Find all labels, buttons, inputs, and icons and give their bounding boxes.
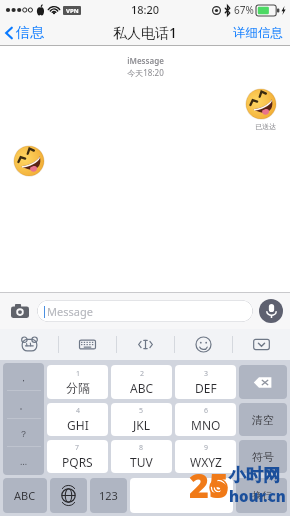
button[interactable]: 清空 — [239, 403, 287, 436]
staticText: 私人电话1 — [113, 23, 178, 42]
staticText: 1 — [76, 369, 81, 379]
staticText: 8 — [139, 443, 144, 453]
staticText: 清空 — [252, 413, 274, 427]
button[interactable]: 符号 — [239, 440, 287, 473]
button[interactable]: 123 — [90, 478, 127, 513]
staticText: 小时网 — [229, 465, 280, 486]
button[interactable]: 3 — [175, 365, 236, 399]
button[interactable]: 9 — [175, 440, 236, 473]
staticText: PQRS — [62, 454, 93, 470]
staticText: 信息 — [16, 24, 44, 42]
staticText: 3 — [204, 369, 209, 379]
button[interactable]: Hide keyboard — [233, 329, 290, 360]
button[interactable]: ， — [3, 363, 44, 391]
button[interactable]: Baidu input — [0, 329, 58, 360]
button[interactable]: ？ — [3, 419, 44, 447]
button[interactable]: Message — [37, 300, 253, 322]
button[interactable]: Move cursor — [117, 329, 174, 360]
staticText: 123 — [99, 488, 118, 503]
button[interactable] — [14, 146, 44, 176]
staticText: 67% — [234, 3, 254, 17]
staticText: 4 — [76, 406, 81, 416]
staticText: MNO — [191, 417, 221, 433]
button[interactable]: 4 — [47, 403, 108, 436]
staticText: VPN — [66, 7, 79, 15]
button[interactable]: 7 — [47, 440, 108, 473]
button[interactable]: … — [3, 447, 44, 475]
staticText: ， — [19, 372, 28, 383]
staticText: DEF — [195, 380, 217, 396]
staticText: 7 — [75, 443, 80, 453]
button[interactable]: 2 — [111, 365, 172, 399]
button[interactable]: Delete — [239, 365, 287, 399]
button[interactable]: 详细信息 — [226, 21, 290, 45]
staticText: 。 — [19, 400, 28, 411]
staticText: 18:20 — [131, 2, 160, 17]
button[interactable]: 。 — [3, 391, 44, 419]
button[interactable]: 1 — [47, 365, 108, 399]
staticText: ABC — [130, 380, 154, 396]
button[interactable] — [246, 89, 276, 119]
staticText: 已送达 — [255, 122, 276, 131]
button[interactable]: Emoji — [175, 329, 232, 360]
staticText: 6 — [204, 406, 209, 416]
staticText: ？ — [19, 428, 28, 439]
staticText: … — [20, 455, 28, 467]
button[interactable]: 信息 — [0, 21, 52, 45]
staticText: hour.cn — [229, 486, 286, 506]
staticText: 今天18:20 — [127, 67, 164, 78]
staticText: 25 — [189, 462, 229, 508]
staticText: 9 — [204, 443, 209, 453]
staticText: JKL — [133, 417, 150, 433]
button[interactable]: 8 — [111, 440, 172, 473]
button[interactable]: Voice message — [259, 299, 283, 323]
button[interactable]: 换行 — [236, 478, 287, 513]
staticText: 符号 — [252, 450, 274, 464]
staticText: WXYZ — [190, 454, 222, 470]
button[interactable]: 5 — [111, 403, 172, 436]
button[interactable]: ABC — [3, 478, 47, 513]
staticText: 2 — [140, 369, 145, 379]
staticText: iMessage — [127, 55, 164, 66]
button[interactable]: 6 — [175, 403, 236, 436]
staticText: TUV — [130, 454, 153, 470]
staticText: ABC — [14, 488, 36, 503]
staticText: Message — [47, 304, 93, 319]
staticText: 分隔 — [66, 380, 90, 395]
staticText: GHI — [67, 417, 89, 433]
staticText: 换行 — [252, 489, 272, 502]
staticText: 5 — [139, 406, 144, 416]
button[interactable]: Keyboard layout — [59, 329, 116, 360]
button[interactable]: Camera — [7, 298, 33, 324]
button[interactable]: Switch language — [50, 478, 87, 513]
button[interactable]: Space — [130, 478, 233, 513]
